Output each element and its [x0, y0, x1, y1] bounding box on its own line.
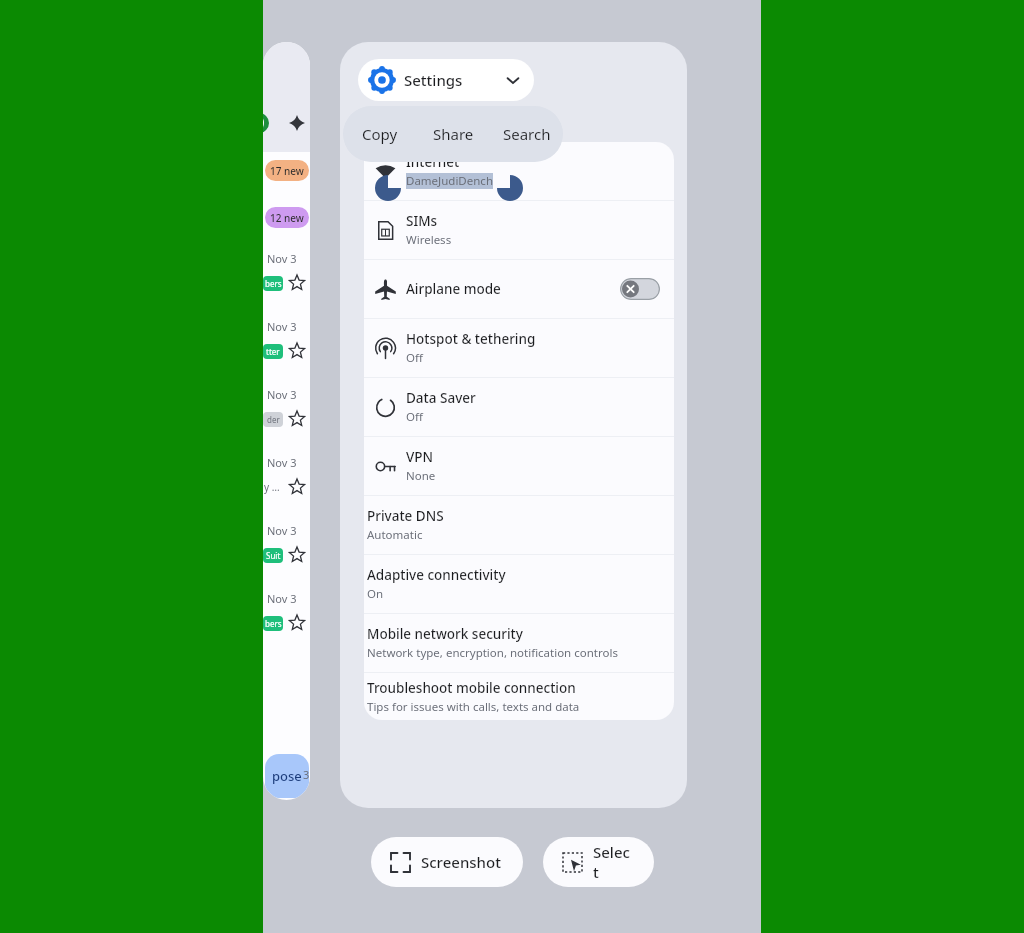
- staticText: Private DNS: [367, 507, 444, 525]
- staticText: Airplane mode: [406, 280, 501, 298]
- staticText: bers: [265, 618, 282, 629]
- staticText: Select: [593, 842, 634, 882]
- staticText: tter: [266, 346, 280, 357]
- staticText: Settings: [404, 70, 463, 90]
- staticText: 3: [303, 767, 310, 782]
- staticText: Off: [406, 409, 423, 425]
- button[interactable]: Settings: [358, 59, 534, 101]
- button[interactable]: SIMs: [364, 201, 674, 259]
- staticText: Mobile network security: [367, 625, 523, 643]
- button[interactable]: Screenshot: [371, 837, 523, 887]
- button[interactable]: Adaptive connectivity: [364, 555, 674, 613]
- staticText: None: [406, 468, 436, 484]
- staticText: Nov 3: [267, 591, 297, 606]
- button[interactable]: Hotspot & tethering: [364, 319, 674, 377]
- staticText: Nov 3: [267, 523, 297, 538]
- button[interactable]: Select: [543, 837, 654, 887]
- button[interactable]: Data Saver: [364, 378, 674, 436]
- staticText: Wireless: [406, 232, 452, 248]
- staticText: Troubleshoot mobile connection: [367, 679, 576, 697]
- button[interactable]: Mobile network security: [364, 614, 674, 672]
- button[interactable]: Airplane mode toggle: [620, 278, 660, 300]
- staticText: Internet: [406, 153, 460, 171]
- button[interactable]: Compose: [265, 754, 309, 798]
- staticText: Suit: [266, 550, 281, 561]
- staticText: 17 new: [270, 164, 304, 178]
- staticText: Search: [503, 124, 551, 144]
- staticText: Hotspot & tethering: [406, 330, 536, 348]
- staticText: DameJudiDench: [406, 173, 493, 189]
- staticText: Nov 3: [267, 251, 297, 266]
- staticText: Nov 3: [267, 455, 297, 470]
- staticText: Tips for issues with calls, texts and da…: [367, 699, 580, 715]
- button[interactable]: Search: [490, 106, 563, 162]
- button[interactable]: Copy: [343, 106, 417, 162]
- staticText: Nov 3: [267, 387, 297, 402]
- button[interactable]: Internet: [364, 142, 674, 200]
- button[interactable]: Airplane mode: [364, 260, 674, 318]
- staticText: Network type, encryption, notification c…: [367, 645, 618, 661]
- staticText: Share: [433, 124, 474, 144]
- staticText: Nov 3: [267, 319, 297, 334]
- staticText: Automatic: [367, 527, 423, 543]
- button[interactable]: Troubleshoot mobile connection: [364, 673, 674, 720]
- staticText: pose: [272, 767, 302, 785]
- staticText: Copy: [362, 124, 398, 144]
- staticText: 12 new: [270, 211, 304, 225]
- staticText: Screenshot: [421, 852, 501, 872]
- button[interactable]: Share: [417, 106, 490, 162]
- staticText: Data Saver: [406, 389, 476, 407]
- staticText: der: [267, 414, 280, 425]
- staticText: y …: [264, 480, 280, 494]
- staticText: VPN: [406, 448, 434, 466]
- button[interactable]: Private DNS: [364, 496, 674, 554]
- staticText: Adaptive connectivity: [367, 566, 506, 584]
- staticText: On: [367, 586, 384, 602]
- staticText: bers: [265, 278, 282, 289]
- button[interactable]: VPN: [364, 437, 674, 495]
- staticText: SIMs: [406, 212, 438, 230]
- staticText: Off: [406, 350, 423, 366]
